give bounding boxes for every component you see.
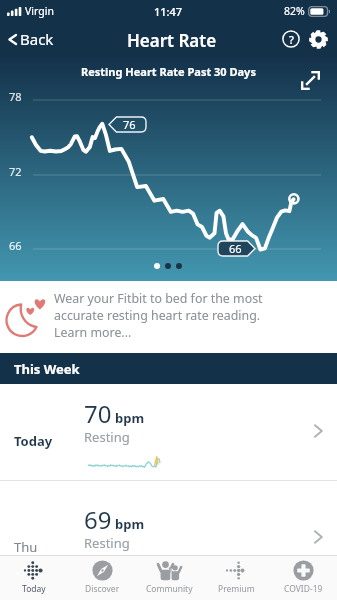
staticText: 66: [9, 238, 22, 253]
staticText: 72: [9, 164, 22, 179]
staticText: 82%: [284, 4, 305, 18]
staticText: Discover: [85, 583, 120, 595]
staticText: 70: [84, 397, 112, 430]
button[interactable]: Expand chart: [296, 66, 324, 94]
button[interactable]: Premium: [203, 556, 270, 600]
staticText: Premium: [218, 583, 255, 595]
staticText: Resting: [84, 534, 130, 552]
staticText: 76: [123, 117, 136, 132]
staticText: Community: [146, 583, 193, 595]
staticText: Today: [22, 583, 46, 595]
button[interactable]: Help: [279, 27, 303, 51]
button[interactable]: Discover: [68, 556, 136, 600]
button[interactable]: Community: [136, 556, 203, 600]
button[interactable]: Settings: [306, 27, 330, 51]
staticText: Resting Heart Rate Past 30 Days: [81, 64, 256, 79]
button[interactable]: Today: [0, 384, 337, 481]
button[interactable]: Wear your Fitbit to bed for the most acc…: [0, 281, 337, 353]
staticText: ?: [289, 32, 294, 47]
button[interactable]: Back: [0, 24, 62, 54]
staticText: Back: [20, 29, 54, 49]
staticText: This Week: [14, 360, 80, 378]
staticText: 11:47: [154, 4, 183, 19]
staticText: 78: [9, 89, 22, 104]
staticText: Thu: [14, 538, 38, 556]
staticText: bpm: [115, 409, 145, 427]
staticText: Heart Rate: [127, 29, 217, 52]
staticText: bpm: [115, 515, 145, 533]
staticText: 66: [229, 241, 242, 256]
staticText: Today: [14, 432, 53, 450]
button[interactable]: COVID-19: [270, 556, 337, 600]
staticText: Wear your Fitbit to bed for the most acc…: [54, 290, 263, 341]
staticText: 69: [84, 503, 112, 536]
staticText: Resting: [84, 428, 130, 446]
button[interactable]: Today: [0, 556, 68, 600]
staticText: COVID-19: [284, 583, 323, 595]
button[interactable]: Thu: [0, 481, 337, 571]
staticText: Virgin: [25, 4, 54, 18]
